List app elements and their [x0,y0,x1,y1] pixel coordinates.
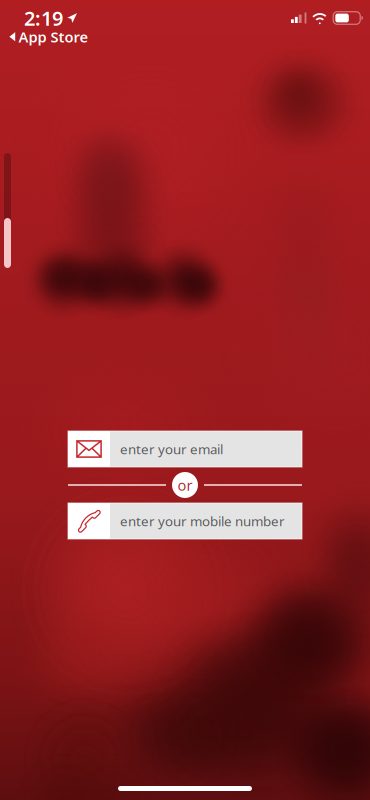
staticText: enter your email [120,440,223,458]
button[interactable]: enter your email [68,431,302,467]
button[interactable]: enter your mobile number [68,503,302,539]
staticText: App Store [19,27,89,46]
staticText: or [177,475,192,495]
staticText: enter your mobile number [120,512,285,530]
button[interactable]: App Store [0,27,89,48]
staticText: 2:19 [24,5,63,31]
